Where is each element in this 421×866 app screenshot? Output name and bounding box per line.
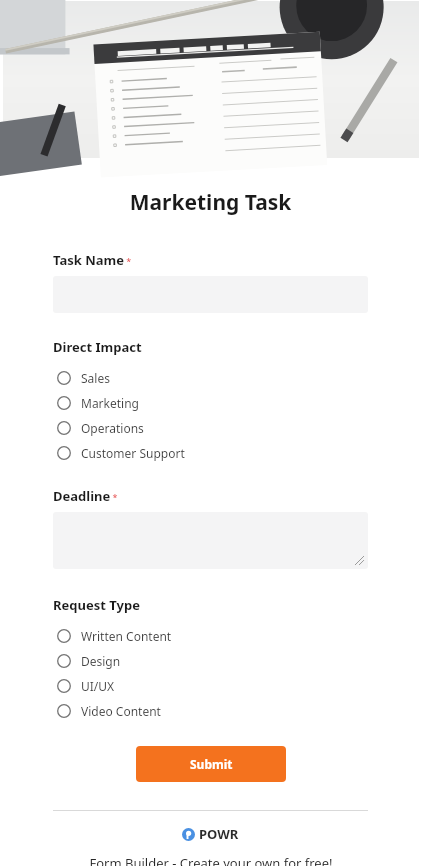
staticText: Form Builder - Create your own for free! bbox=[89, 854, 333, 866]
staticText: Request Type bbox=[53, 596, 140, 614]
staticText: Video Content bbox=[81, 703, 161, 719]
button[interactable]: UI/UX bbox=[53, 673, 368, 698]
staticText: UI/UX bbox=[81, 678, 115, 694]
staticText: Submit bbox=[190, 756, 233, 772]
button[interactable]: Design bbox=[53, 648, 368, 673]
staticText: Marketing bbox=[81, 395, 139, 411]
button[interactable]: Form Builder - Create your own for free! bbox=[53, 854, 368, 866]
other: POWR logo bbox=[182, 828, 195, 841]
staticText: Design bbox=[81, 653, 121, 669]
staticText: Direct Impact bbox=[53, 338, 142, 356]
button[interactable]: Marketing bbox=[53, 390, 368, 415]
staticText: Marketing Task bbox=[0, 188, 421, 217]
button[interactable]: Operations bbox=[53, 415, 368, 440]
staticText: Operations bbox=[81, 420, 144, 436]
staticText: Written Content bbox=[81, 628, 172, 644]
button[interactable]: Video Content bbox=[53, 698, 368, 723]
button[interactable]: Written Content bbox=[53, 623, 368, 648]
button[interactable]: Customer Support bbox=[53, 440, 368, 465]
staticText: Sales bbox=[81, 370, 110, 386]
staticText: Deadline * bbox=[53, 487, 118, 505]
button[interactable]: Sales bbox=[53, 365, 368, 390]
staticText: POWR bbox=[199, 825, 239, 843]
staticText: Task Name * bbox=[53, 251, 132, 269]
button[interactable]: POWR logo bbox=[53, 825, 368, 843]
staticText: Customer Support bbox=[81, 445, 185, 461]
button[interactable]: Submit bbox=[136, 746, 286, 782]
